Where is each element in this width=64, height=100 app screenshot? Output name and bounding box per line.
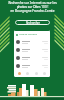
staticText: Recherche sur Internet ou sur les photos… [8,1,57,13]
button[interactable] [16,54,48,62]
staticText: Rechercher [26,21,40,25]
button[interactable] [16,38,48,46]
button[interactable]: Messages [33,70,40,77]
button[interactable] [16,46,48,54]
button[interactable]: Rechercher [15,20,50,25]
button[interactable]: Profile [41,70,48,77]
button[interactable] [16,62,48,70]
staticText: Liste de contacts [19,33,37,36]
button[interactable]: Home [16,70,23,77]
button[interactable]: Liste de contacts [16,31,48,38]
button[interactable]: Search [24,70,31,77]
